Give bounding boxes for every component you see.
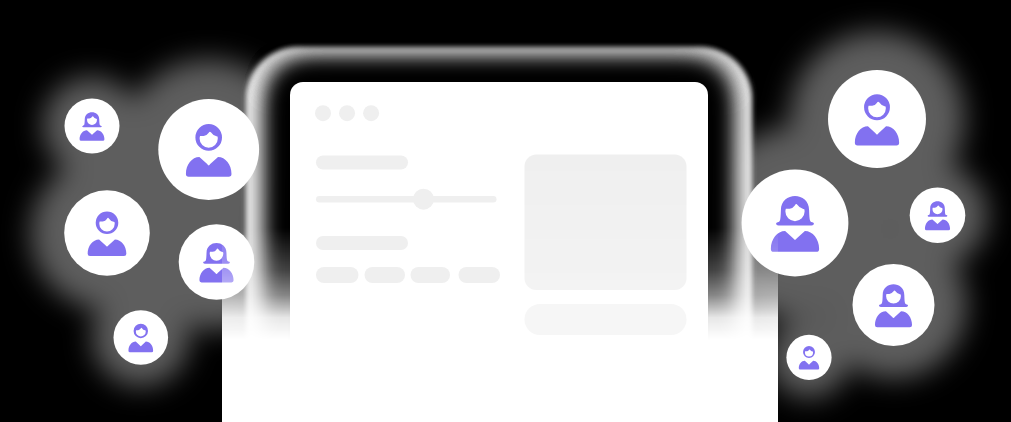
button[interactable]: Team collaboration illustration <box>0 0 1011 422</box>
